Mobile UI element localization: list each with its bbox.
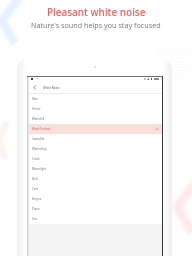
button[interactable]: Engine [27,194,163,204]
staticText: Sea [32,217,37,221]
button[interactable]: Sea [27,214,163,224]
button[interactable]: Bird [27,174,163,184]
staticText: Moonlight [32,167,47,171]
staticText: Creek [32,157,40,161]
button[interactable]: Rain [27,94,163,104]
staticText: Cafe [32,187,39,191]
button[interactable]: Piano [27,204,163,214]
staticText: Nature's sound helps you stay focused [31,20,161,30]
button[interactable]: Waterdrop [27,144,163,154]
staticText: Piano [32,207,40,211]
button[interactable]: Cafe [27,184,163,194]
button[interactable]: Waterfall [27,114,163,124]
button[interactable]: Moonlight [27,164,163,174]
button[interactable]: Back [31,84,38,91]
staticText: Campfire [32,137,45,141]
button[interactable]: Campfire [27,134,163,144]
staticText: Waterdrop [32,147,47,151]
staticText: Wind Crickets [32,127,51,131]
staticText: Rain [32,97,38,101]
staticText: Engine [32,197,42,201]
staticText: Waterfall [32,117,45,121]
button[interactable]: Forest [27,104,163,114]
button[interactable]: Wind Crickets [27,124,163,134]
staticText: Forest [32,107,41,111]
staticText: Pleasant white noise [47,5,146,19]
staticText: White Noise [43,86,60,90]
button[interactable]: Creek [27,154,163,164]
staticText: Bird [32,177,38,181]
